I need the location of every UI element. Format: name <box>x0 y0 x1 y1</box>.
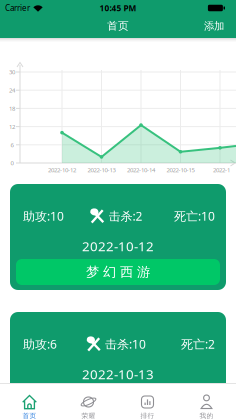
button[interactable]: 我的 <box>177 395 236 420</box>
staticText: 我的 <box>199 411 213 420</box>
staticText: 2022-10-12 <box>82 237 154 255</box>
button[interactable]: 排行 <box>118 395 177 420</box>
staticText: 击杀:2 <box>108 208 142 224</box>
button[interactable]: 首页 <box>0 395 59 420</box>
button[interactable]: 梦 幻 西 游 <box>16 259 220 285</box>
staticText: 6 <box>10 141 13 149</box>
staticText: 2022-10-14 <box>127 166 155 174</box>
staticText: 30 <box>9 68 15 76</box>
staticText: 18 <box>9 104 15 112</box>
staticText: 首页 <box>107 19 129 33</box>
staticText: 2022-10-13 <box>82 365 154 383</box>
staticText: 2022-10-12 <box>48 166 76 174</box>
button[interactable]: 荣耀 <box>59 395 118 420</box>
button[interactable]: 添加 <box>204 19 224 32</box>
staticText: Carrier <box>5 3 30 13</box>
staticText: 10:45 PM <box>99 2 136 14</box>
staticText: 2022-10-15 <box>166 166 194 174</box>
staticText: 排行 <box>140 411 154 420</box>
button[interactable]: 梦 幻 西 游 <box>16 387 220 413</box>
staticText: 助攻:10 <box>23 208 64 224</box>
staticText: 12 <box>9 122 15 131</box>
staticText: 死亡:10 <box>174 208 215 224</box>
staticText: 梦 幻 西 游 <box>86 392 150 408</box>
staticText: 0 <box>10 159 13 167</box>
staticText: 击杀:10 <box>105 336 146 352</box>
staticText: 死亡:2 <box>181 336 215 352</box>
staticText: 2022-10-13 <box>87 166 115 174</box>
staticText: 荣耀 <box>81 411 95 420</box>
staticText: 2022-1 <box>213 166 230 174</box>
staticText: 梦 幻 西 游 <box>86 264 150 280</box>
staticText: 24 <box>9 86 15 94</box>
staticText: 首页 <box>22 411 36 420</box>
staticText: 助攻:6 <box>23 336 57 352</box>
staticText: 添加 <box>204 19 224 32</box>
